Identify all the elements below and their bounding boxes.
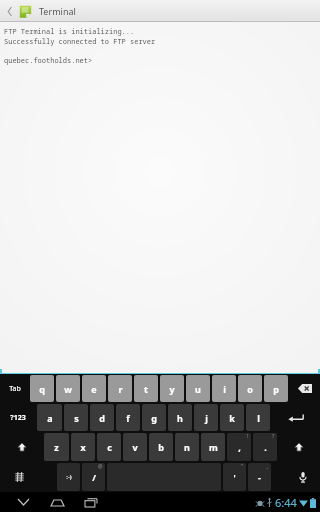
- button[interactable]: /: [82, 463, 105, 491]
- button[interactable]: y: [160, 375, 184, 402]
- staticText: Successfully connected to FTP server: [4, 37, 156, 47]
- button[interactable]: .: [253, 433, 277, 461]
- button[interactable]: n: [175, 433, 199, 461]
- staticText: n: [184, 441, 190, 453]
- staticText: e: [91, 383, 97, 395]
- staticText: g: [151, 412, 157, 424]
- staticText: v: [132, 441, 138, 453]
- button[interactable]: f: [116, 404, 140, 431]
- staticText: h: [177, 412, 183, 424]
- button[interactable]: m: [201, 433, 225, 461]
- button[interactable]: Tab: [1, 375, 28, 402]
- staticText: o: [247, 383, 253, 395]
- staticText: u: [195, 383, 201, 395]
- button[interactable]: r: [108, 375, 132, 402]
- button[interactable]: z: [44, 433, 69, 461]
- button[interactable]: x: [71, 433, 95, 461]
- staticText: z: [54, 441, 59, 453]
- staticText: FTP Terminal is initializing...: [4, 27, 135, 37]
- button[interactable]: Shift: [1, 433, 42, 461]
- staticText: ": [241, 463, 244, 470]
- staticText: k: [229, 412, 235, 424]
- staticText: ?: [272, 433, 275, 440]
- button[interactable]: ': [223, 463, 246, 491]
- button[interactable]: k: [220, 404, 244, 431]
- staticText: l: [257, 412, 260, 424]
- button[interactable]: ,: [227, 433, 251, 461]
- staticText: 6:44: [275, 495, 297, 510]
- button[interactable]: o: [238, 375, 262, 402]
- staticText: r: [118, 383, 123, 395]
- button[interactable]: Recent apps: [78, 492, 104, 512]
- staticText: quebec.footholds.net>: [4, 56, 93, 66]
- button[interactable]: i: [212, 375, 236, 402]
- staticText: y: [169, 383, 175, 395]
- staticText: t: [144, 383, 148, 395]
- button[interactable]: Shift: [279, 433, 319, 461]
- staticText: w: [64, 383, 72, 395]
- staticText: @: [98, 463, 103, 470]
- button[interactable]: q: [30, 375, 54, 402]
- staticText: a: [47, 412, 53, 424]
- button[interactable]: e: [82, 375, 106, 402]
- button[interactable]: :-): [57, 463, 80, 491]
- button[interactable]: v: [123, 433, 147, 461]
- button[interactable]: Back: [4, 0, 16, 22]
- staticText: -: [258, 471, 261, 483]
- button[interactable]: c: [97, 433, 121, 461]
- staticText: f: [126, 412, 130, 424]
- staticText: c: [107, 441, 112, 453]
- button[interactable]: u: [186, 375, 210, 402]
- staticText: i: [223, 383, 226, 395]
- button[interactable]: Backspace: [290, 375, 319, 402]
- staticText: ?123: [10, 413, 26, 423]
- button[interactable]: Enter: [272, 404, 319, 431]
- staticText: q: [39, 383, 45, 395]
- staticText: ': [233, 472, 236, 483]
- staticText: .: [264, 441, 267, 453]
- button[interactable]: Home: [44, 492, 70, 512]
- staticText: /: [92, 471, 96, 483]
- button[interactable]: w: [56, 375, 80, 402]
- staticText: m: [209, 441, 218, 453]
- staticText: d: [99, 412, 105, 424]
- button[interactable]: Voice input: [286, 463, 319, 491]
- staticText: j: [205, 412, 208, 424]
- button[interactable]: g: [142, 404, 166, 431]
- staticText: !: [247, 433, 249, 440]
- button[interactable]: j: [194, 404, 218, 431]
- button[interactable]: -: [248, 463, 271, 491]
- button[interactable]: ?123: [1, 404, 35, 431]
- button[interactable]: t: [134, 375, 158, 402]
- button[interactable]: s: [64, 404, 88, 431]
- staticText: b: [158, 441, 164, 453]
- button[interactable]: h: [168, 404, 192, 431]
- button[interactable]: a: [37, 404, 62, 431]
- button[interactable]: Hide keyboard: [10, 492, 36, 512]
- staticText: _: [266, 463, 269, 470]
- button[interactable]: l: [246, 404, 270, 431]
- staticText: s: [74, 412, 79, 424]
- button[interactable]: Switch keyboard: [1, 463, 37, 491]
- staticText: p: [273, 383, 279, 395]
- button[interactable]: p: [264, 375, 288, 402]
- button[interactable]: d: [90, 404, 114, 431]
- staticText: Tab: [9, 384, 21, 394]
- staticText: Terminal: [39, 5, 76, 17]
- button[interactable]: b: [149, 433, 173, 461]
- staticText: ,: [238, 441, 241, 453]
- staticText: :-): [66, 473, 72, 481]
- staticText: x: [80, 441, 86, 453]
